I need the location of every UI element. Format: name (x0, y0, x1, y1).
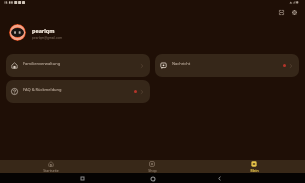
staticText: Startseite (43, 168, 59, 173)
staticText: Nachricht (172, 61, 191, 66)
button[interactable]: FAQ & Rückmeldung (6, 80, 150, 103)
staticText: pearlqm (32, 27, 55, 34)
staticText: Mein (250, 168, 259, 173)
button[interactable]: Home (148, 174, 157, 183)
button[interactable]: pearlqm (9, 24, 305, 41)
button[interactable]: Settings (290, 9, 299, 16)
button[interactable]: Scan QR code (277, 9, 286, 16)
button[interactable]: Recents (78, 174, 87, 183)
button[interactable]: Familienverwaltung (6, 54, 150, 77)
button[interactable]: Shop (101, 160, 203, 173)
button[interactable]: Mein (203, 160, 305, 173)
staticText: pearlqm@gmail.com (32, 36, 63, 40)
button[interactable]: Back (215, 174, 224, 183)
staticText: Shop (148, 168, 157, 173)
button[interactable]: Startseite (0, 160, 101, 173)
staticText: Familienverwaltung (23, 61, 61, 66)
staticText: FAQ & Rückmeldung (23, 87, 62, 92)
button[interactable]: Nachricht (155, 54, 299, 77)
